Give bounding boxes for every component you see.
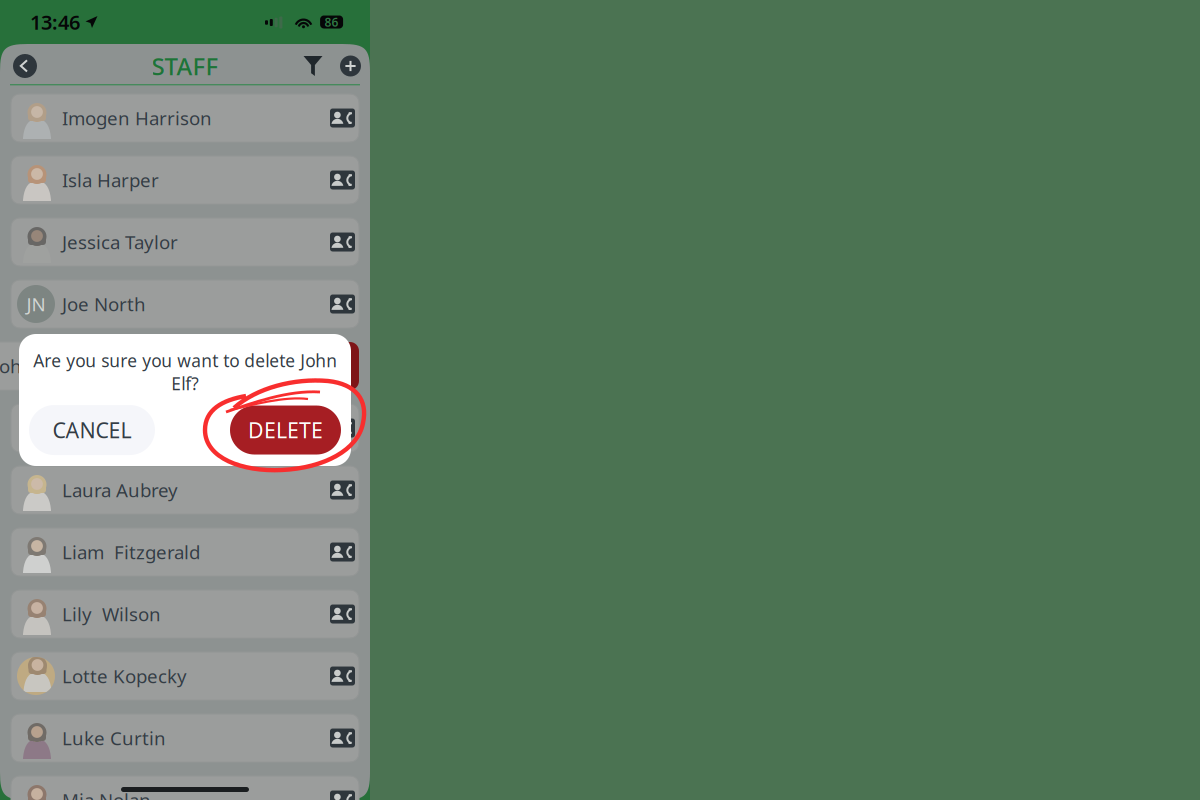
staticText: Imogen Harrison bbox=[62, 106, 212, 130]
button[interactable]: DELETE bbox=[230, 405, 341, 454]
staticText: Laura Aubrey bbox=[62, 478, 178, 502]
staticText: 86 bbox=[325, 14, 339, 30]
staticText: Are you sure you want to delete John Elf… bbox=[33, 349, 337, 395]
button[interactable]: Imogen Harrison bbox=[11, 94, 359, 142]
button[interactable]: Jessica Taylor bbox=[11, 218, 359, 266]
button[interactable]: CANCEL bbox=[29, 405, 155, 455]
button[interactable]: Luke Curtin bbox=[11, 714, 359, 762]
button[interactable]: Liam Fitzgerald bbox=[11, 528, 359, 576]
staticText: Liam Fitzgerald bbox=[62, 540, 200, 564]
button[interactable]: Filter bbox=[301, 51, 325, 81]
button[interactable]: Add staff member bbox=[340, 55, 361, 76]
button[interactable]: Laura Aubrey bbox=[11, 466, 359, 514]
staticText: Isla Harper bbox=[62, 168, 159, 192]
staticText: CANCEL bbox=[52, 416, 131, 444]
staticText: STAFF bbox=[151, 50, 218, 82]
button[interactable]: John Elf bbox=[0, 342, 291, 390]
staticText: Luke Curtin bbox=[62, 726, 166, 750]
button[interactable]: JN bbox=[11, 280, 359, 328]
button[interactable]: Lotte Kopecky bbox=[11, 652, 359, 700]
staticText: Mia Nolan bbox=[62, 788, 151, 800]
staticText: Lotte Kopecky bbox=[62, 664, 187, 688]
staticText: Joe North bbox=[62, 292, 146, 316]
button[interactable]: Kaitlin Byrne bbox=[11, 404, 359, 452]
staticText: John Elf bbox=[0, 354, 60, 378]
staticText: Kaitlin Byrne bbox=[62, 416, 176, 440]
staticText: 13:46 bbox=[30, 9, 80, 35]
button[interactable]: Mia Nolan bbox=[11, 776, 359, 800]
staticText: DELETE bbox=[248, 416, 323, 444]
button[interactable]: Lily Wilson bbox=[11, 590, 359, 638]
button[interactable]: Isla Harper bbox=[11, 156, 359, 204]
button[interactable]: Back bbox=[13, 54, 37, 78]
staticText: JN bbox=[26, 292, 45, 316]
button[interactable]: Delete John Elf bbox=[291, 342, 359, 390]
staticText: Jessica Taylor bbox=[62, 230, 178, 254]
staticText: Lily Wilson bbox=[62, 602, 161, 626]
